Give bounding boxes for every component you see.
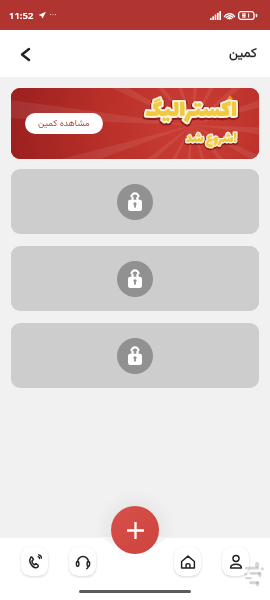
button[interactable]: Add [111,506,159,554]
button[interactable]: Call [21,547,48,576]
button[interactable]: مشاهده کمین [11,88,259,159]
staticText: کمین [229,44,257,64]
button[interactable] [11,323,259,388]
button[interactable]: Profile [222,547,249,576]
button[interactable] [11,246,259,311]
button[interactable]: Home [174,547,201,576]
staticText: شروع شد! [186,129,237,151]
button[interactable]: Back [9,38,41,70]
staticText: اکسترالیگ [145,92,238,131]
staticText: اکسترالیگ [145,93,238,132]
staticText: شروع شد! [186,128,237,150]
button[interactable]: Support [69,547,96,576]
staticText: 11:52 [9,9,34,22]
button[interactable] [11,169,259,234]
staticText: اکسترالیگ [145,92,238,131]
staticText: شروع شد! [186,128,237,150]
staticText: مشاهده کمین [38,117,90,131]
button[interactable]: مشاهده کمین [25,113,103,134]
